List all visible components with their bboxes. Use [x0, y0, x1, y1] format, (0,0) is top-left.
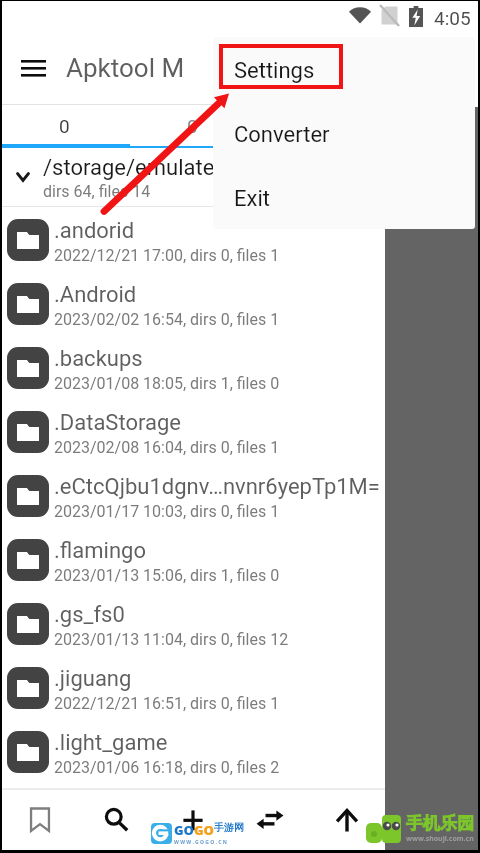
staticText: 手游网 [214, 821, 244, 834]
staticText: 2022/12/21 16:51, dirs 0, files 1 [54, 694, 280, 713]
button[interactable]: Open navigation drawer [2, 37, 64, 99]
staticText: Exit [234, 186, 270, 212]
button[interactable]: /storage/emulated/0 [2, 148, 385, 206]
staticText: 2023/01/17 10:03, dirs 0, files 1 [54, 502, 280, 521]
staticText: 2023/01/13 15:06, dirs 1, files 0 [54, 566, 280, 585]
button[interactable]: Up [308, 790, 385, 850]
staticText: 4:05 [434, 7, 471, 29]
button[interactable]: .flamingo [2, 527, 385, 591]
button[interactable]: Converter [213, 101, 475, 165]
button[interactable]: .DataStorage [2, 399, 385, 463]
staticText: dirs 64, files 14 [43, 182, 151, 201]
staticText: 2023/02/02 16:54, dirs 0, files 1 [54, 310, 280, 329]
button[interactable]: New folder [154, 790, 231, 850]
button[interactable]: .andorid [2, 207, 385, 271]
button[interactable]: 0 [2, 105, 130, 144]
button[interactable]: .eCtcQjbu1dgnv…nvnr6yepTp1M= [2, 463, 385, 527]
button[interactable]: .jiguang [2, 655, 385, 719]
staticText: .gs_fs0 [54, 602, 125, 628]
staticText: .backups [54, 346, 143, 372]
staticText: Settings [234, 58, 315, 84]
staticText: Apktool M [66, 53, 185, 83]
staticText: .DataStorage [54, 410, 181, 436]
button[interactable]: Exit [213, 165, 475, 229]
staticText: 2023/01/08 18:05, dirs 1, files 0 [54, 374, 280, 393]
button[interactable]: .gs_fs0 [2, 591, 385, 655]
staticText: 0 [314, 115, 325, 137]
staticText: .jiguang [54, 666, 132, 692]
staticText: .flamingo [54, 538, 146, 564]
button[interactable]: 0 [258, 105, 385, 144]
staticText: GO [174, 821, 194, 839]
staticText: 0 [187, 115, 198, 137]
staticText: .eCtcQjbu1dgnv…nvnr6yepTp1M= [54, 474, 380, 500]
staticText: .Android [54, 282, 137, 308]
staticText: /storage/emulated/0 [43, 155, 249, 181]
button[interactable]: .backups [2, 335, 385, 399]
staticText: 手机乐园 [406, 813, 474, 834]
staticText: 2023/02/08 16:04, dirs 0, files 1 [54, 438, 280, 457]
staticText: www.shouji.com.cn [406, 834, 474, 844]
staticText: 2023/01/13 11:04, dirs 0, files 12 [54, 630, 289, 649]
staticText: W W W . G O G O . C N [174, 839, 227, 846]
staticText: 2023/01/06 16:18, dirs 0, files 2 [54, 758, 280, 777]
button[interactable]: .Android [2, 271, 385, 335]
button[interactable]: Settings [213, 37, 475, 101]
staticText: Converter [234, 122, 330, 148]
staticText: .andorid [54, 218, 135, 244]
staticText: GO [194, 821, 214, 839]
button[interactable]: Bookmarks [2, 790, 78, 850]
button[interactable]: Transfer [231, 790, 308, 850]
staticText: 0 [59, 115, 70, 137]
button[interactable]: Search [78, 790, 154, 850]
button[interactable]: .light_game [2, 719, 385, 783]
staticText: .light_game [54, 730, 168, 756]
button[interactable]: 0 [130, 105, 258, 144]
staticText: 2022/12/21 17:00, dirs 0, files 1 [54, 246, 280, 265]
